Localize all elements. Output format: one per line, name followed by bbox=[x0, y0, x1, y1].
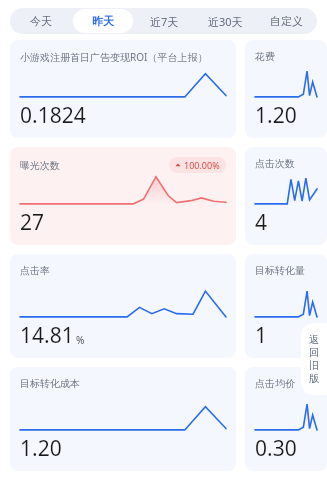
staticText: 目标转化量 bbox=[255, 264, 305, 277]
button[interactable]: 目标转化成本 bbox=[10, 367, 236, 471]
staticText: 100.00% bbox=[184, 159, 220, 171]
staticText: 花费 bbox=[255, 50, 275, 63]
button[interactable]: 近7天 bbox=[135, 9, 194, 33]
button[interactable]: 昨天 bbox=[73, 9, 133, 33]
staticText: % bbox=[76, 333, 85, 347]
staticText: 小游戏注册首日广告变现ROI（平台上报） bbox=[20, 50, 208, 64]
staticText: 4 bbox=[255, 208, 268, 237]
button[interactable]: 自定义 bbox=[257, 9, 316, 33]
button[interactable]: 近30天 bbox=[196, 9, 255, 33]
staticText: 0.30 bbox=[255, 434, 297, 463]
staticText: 近30天 bbox=[208, 14, 243, 29]
staticText: 今天 bbox=[30, 14, 52, 28]
staticText: 14.81 bbox=[20, 321, 74, 350]
button[interactable]: 花费 bbox=[245, 40, 327, 138]
staticText: 1.20 bbox=[20, 434, 62, 463]
button[interactable]: 目标转化量 bbox=[245, 254, 327, 358]
button[interactable]: 点击次数 bbox=[245, 147, 327, 245]
button[interactable]: 今天 bbox=[11, 9, 71, 33]
staticText: 返 回 旧 版 bbox=[309, 333, 319, 385]
button[interactable]: 点击率 bbox=[10, 254, 236, 358]
staticText: 点击均价 bbox=[255, 377, 295, 390]
staticText: 目标转化成本 bbox=[20, 377, 80, 390]
staticText: 曝光次数 bbox=[20, 159, 60, 172]
staticText: 27 bbox=[20, 208, 45, 237]
staticText: 1.20 bbox=[255, 101, 297, 130]
staticText: 自定义 bbox=[270, 14, 303, 28]
staticText: 近7天 bbox=[150, 14, 179, 29]
staticText: 点击率 bbox=[20, 264, 50, 277]
button[interactable]: 曝光次数 bbox=[10, 147, 236, 245]
button[interactable]: 点击均价 bbox=[245, 367, 327, 471]
staticText: 点击次数 bbox=[255, 157, 295, 170]
button[interactable]: 小游戏注册首日广告变现ROI（平台上报） bbox=[10, 40, 236, 138]
button[interactable]: 返回旧版 bbox=[301, 323, 327, 395]
staticText: 1 bbox=[255, 321, 268, 350]
staticText: 0.1824 bbox=[20, 101, 86, 130]
staticText: 昨天 bbox=[92, 14, 114, 28]
